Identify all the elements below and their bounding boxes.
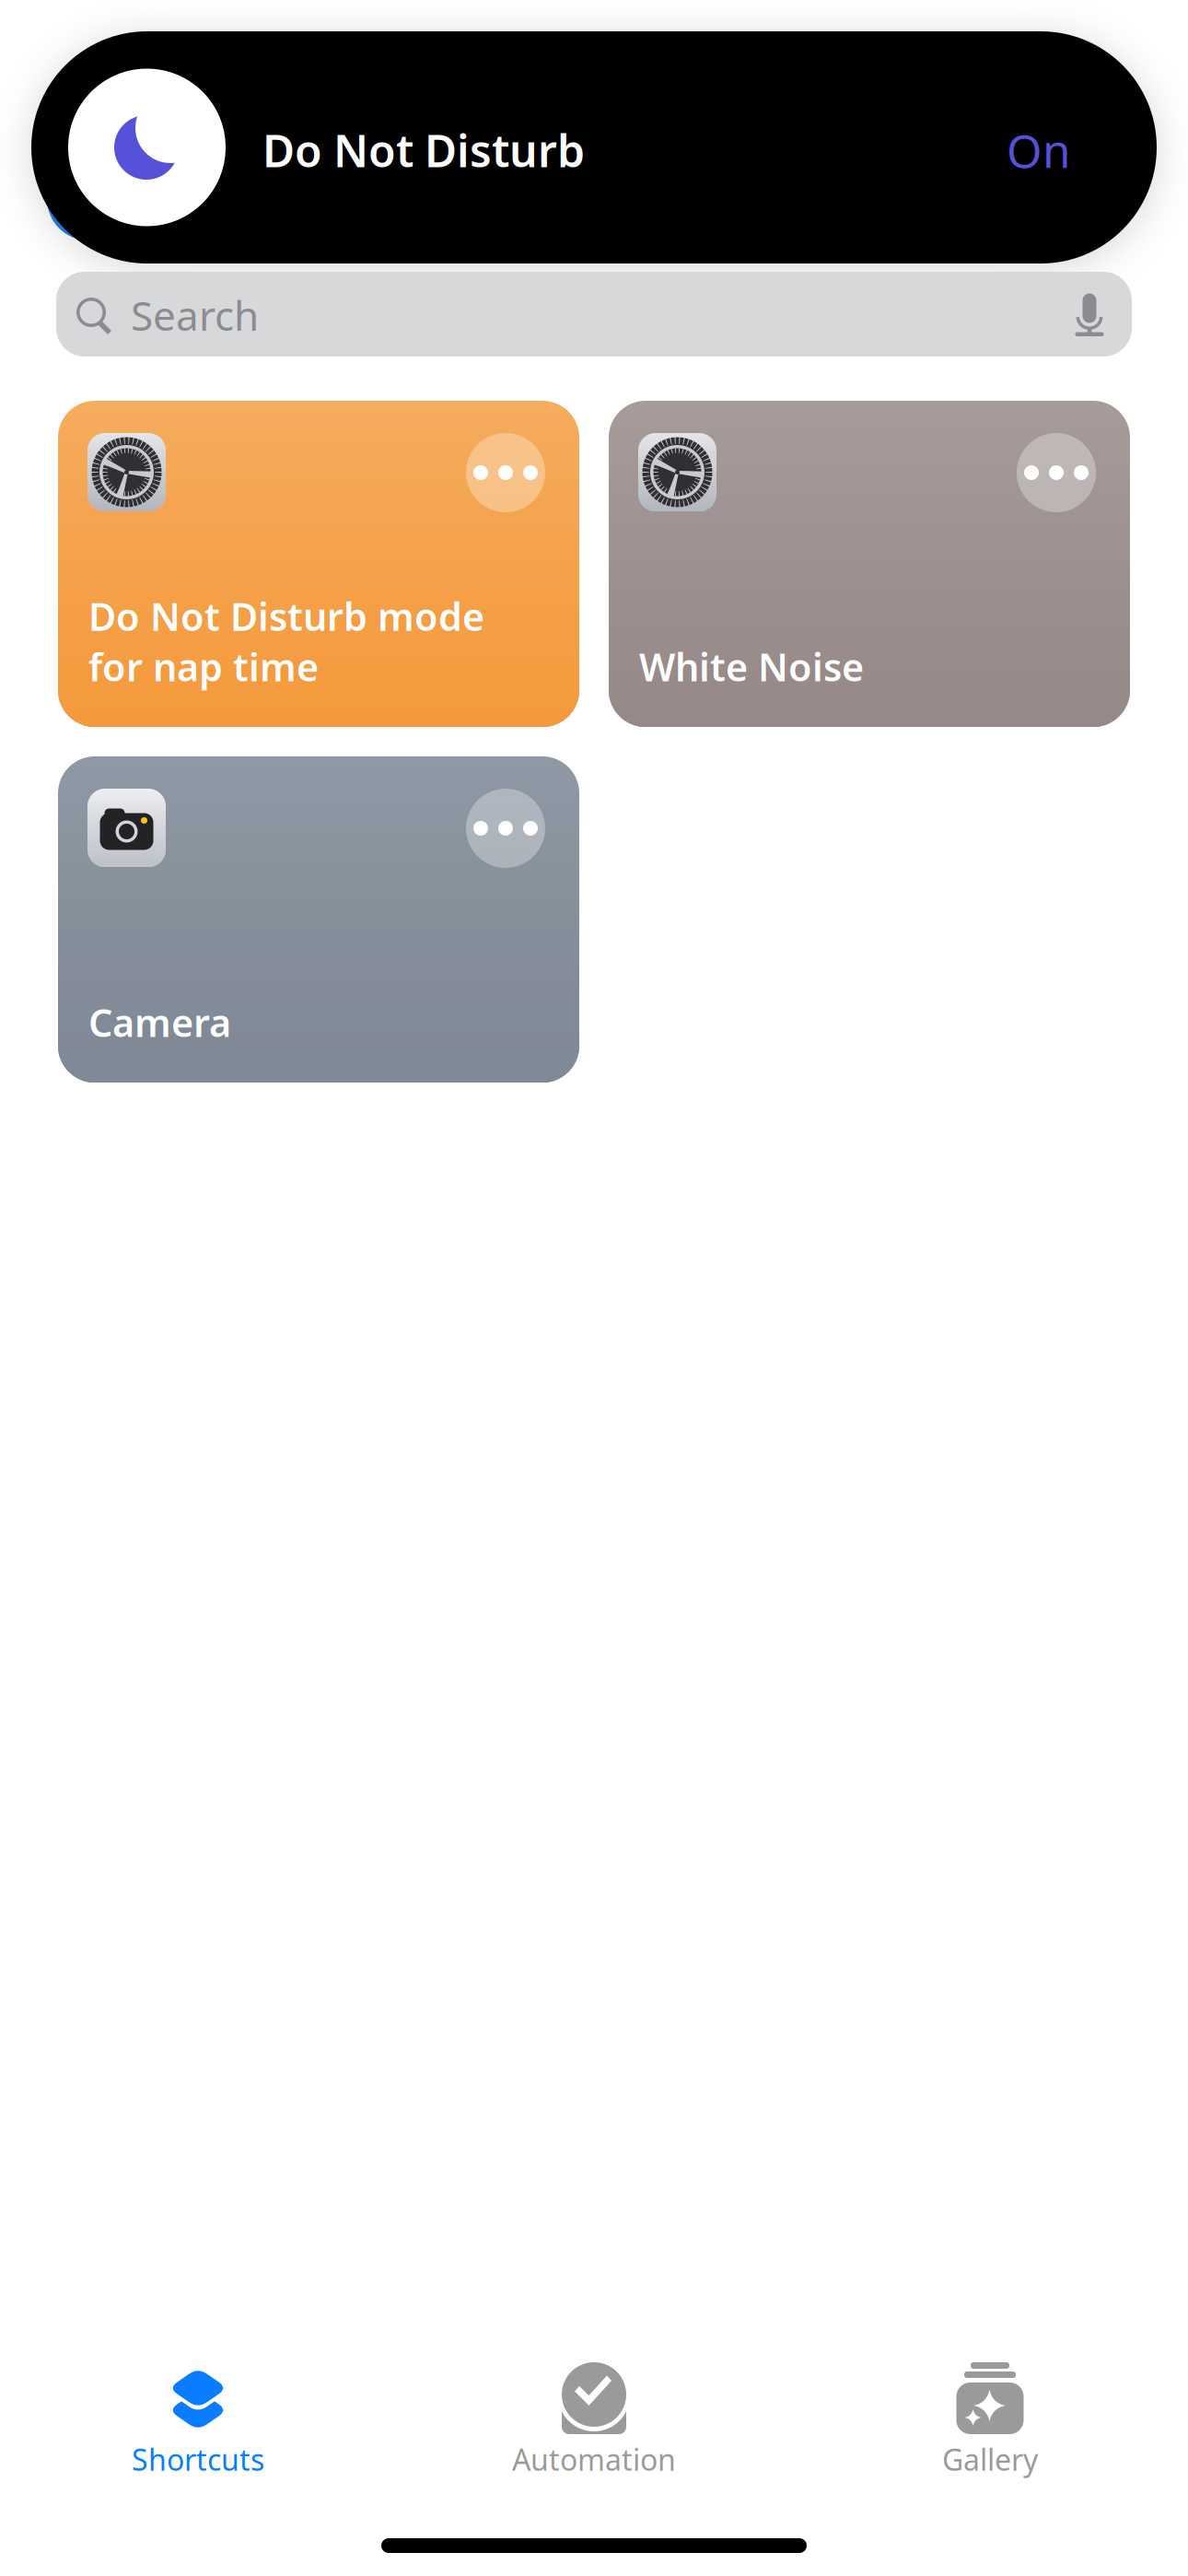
button[interactable]: More options <box>466 433 545 512</box>
staticText: Do Not Disturb <box>262 121 585 179</box>
button[interactable]: More options <box>1017 433 1096 512</box>
staticText: Gallery <box>942 2440 1038 2479</box>
staticText: On <box>1007 120 1070 180</box>
button[interactable]: Gallery <box>792 2362 1188 2479</box>
staticText: Shortcuts <box>132 2440 264 2479</box>
staticText: Automation <box>512 2440 676 2479</box>
staticText: Camera <box>88 997 231 1048</box>
button[interactable]: Search <box>56 272 1132 357</box>
button[interactable]: Do Not Disturb mode for nap time <box>58 401 579 727</box>
button[interactable]: Do Not Disturb <box>31 31 1157 263</box>
button[interactable]: More options <box>466 789 545 868</box>
staticText: Do Not Disturb mode for nap time <box>88 591 484 692</box>
button[interactable]: White Noise <box>609 401 1130 727</box>
staticText: White Noise <box>639 641 864 692</box>
button[interactable]: Automation <box>396 2362 792 2479</box>
button[interactable]: Camera <box>58 756 579 1083</box>
staticText: Search <box>131 288 259 342</box>
button[interactable]: Shortcuts <box>0 2362 396 2479</box>
